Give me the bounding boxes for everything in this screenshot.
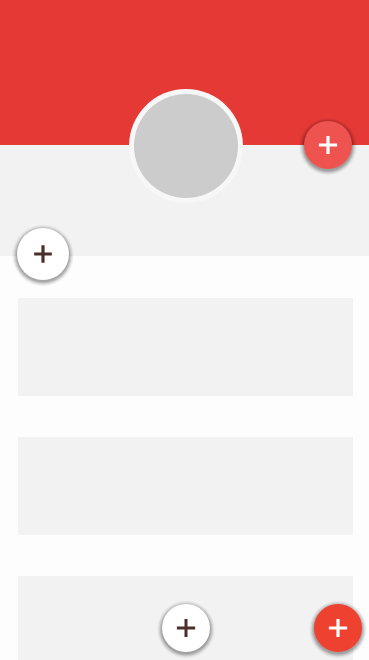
button[interactable] (18, 576, 353, 660)
button[interactable]: Create (17, 228, 69, 280)
button[interactable]: Compose (314, 604, 362, 652)
button[interactable]: New item (162, 604, 210, 652)
button[interactable] (129, 89, 243, 203)
button[interactable]: Add (304, 121, 352, 169)
